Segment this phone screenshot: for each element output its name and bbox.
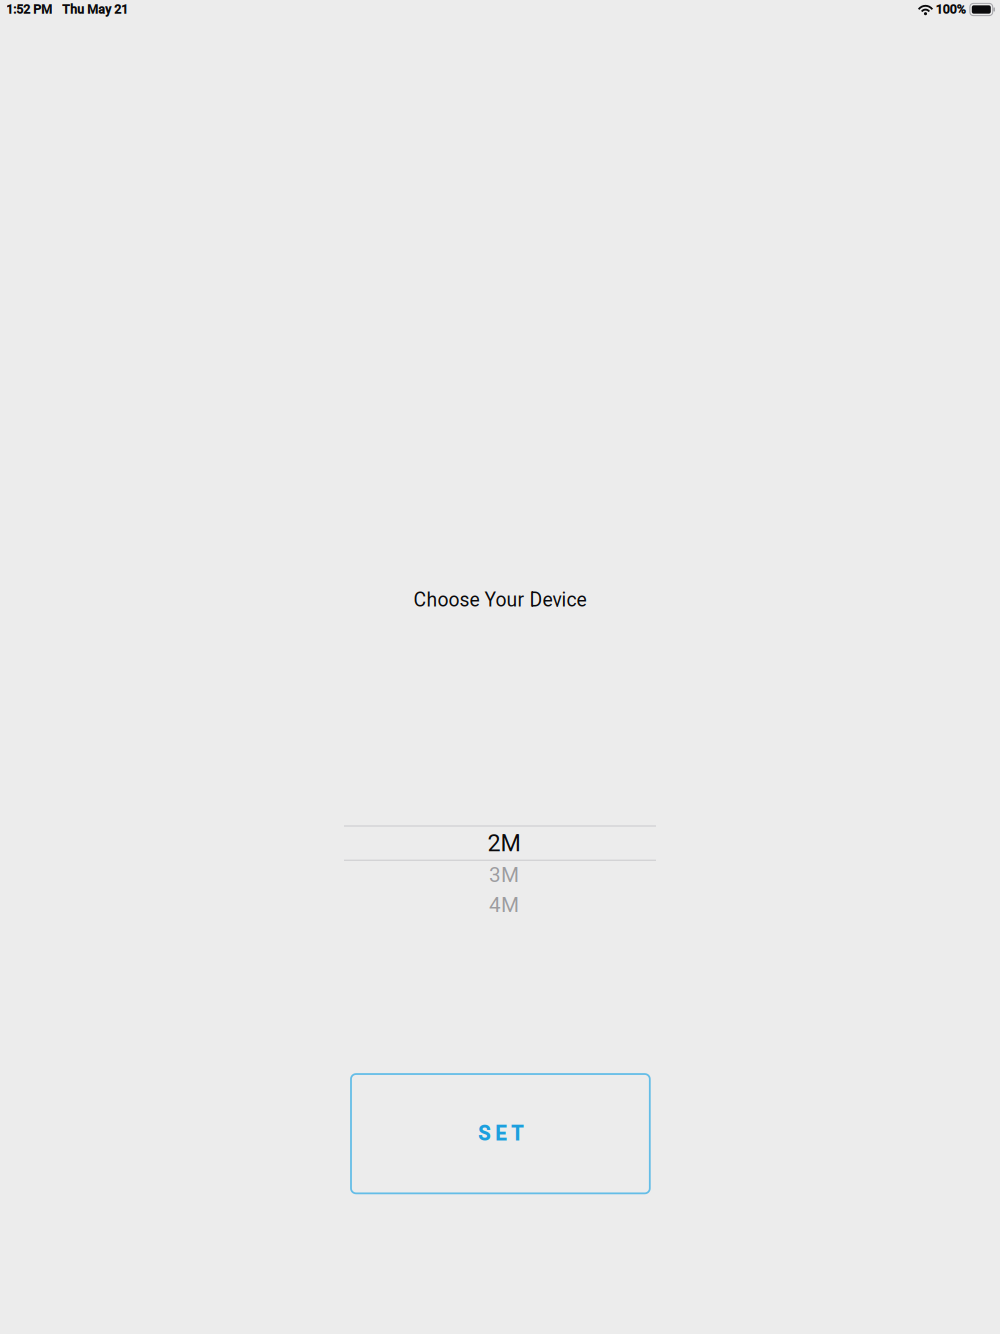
staticText: S [478, 1122, 490, 1145]
staticText: 4M [489, 893, 519, 917]
button[interactable]: 2M [344, 827, 656, 860]
staticText: E [495, 1122, 506, 1145]
staticText: Choose Your Device [413, 589, 586, 611]
button[interactable]: S [351, 1074, 650, 1193]
button[interactable]: 3M [344, 861, 656, 889]
staticText: 2M [487, 829, 520, 857]
staticText: Thu May 21 [62, 2, 128, 17]
staticText: 1:52 PM [6, 2, 52, 17]
staticText: T [511, 1122, 523, 1145]
staticText: 3M [489, 863, 519, 887]
staticText: 100% [935, 2, 965, 17]
button[interactable]: 4M [344, 889, 656, 921]
